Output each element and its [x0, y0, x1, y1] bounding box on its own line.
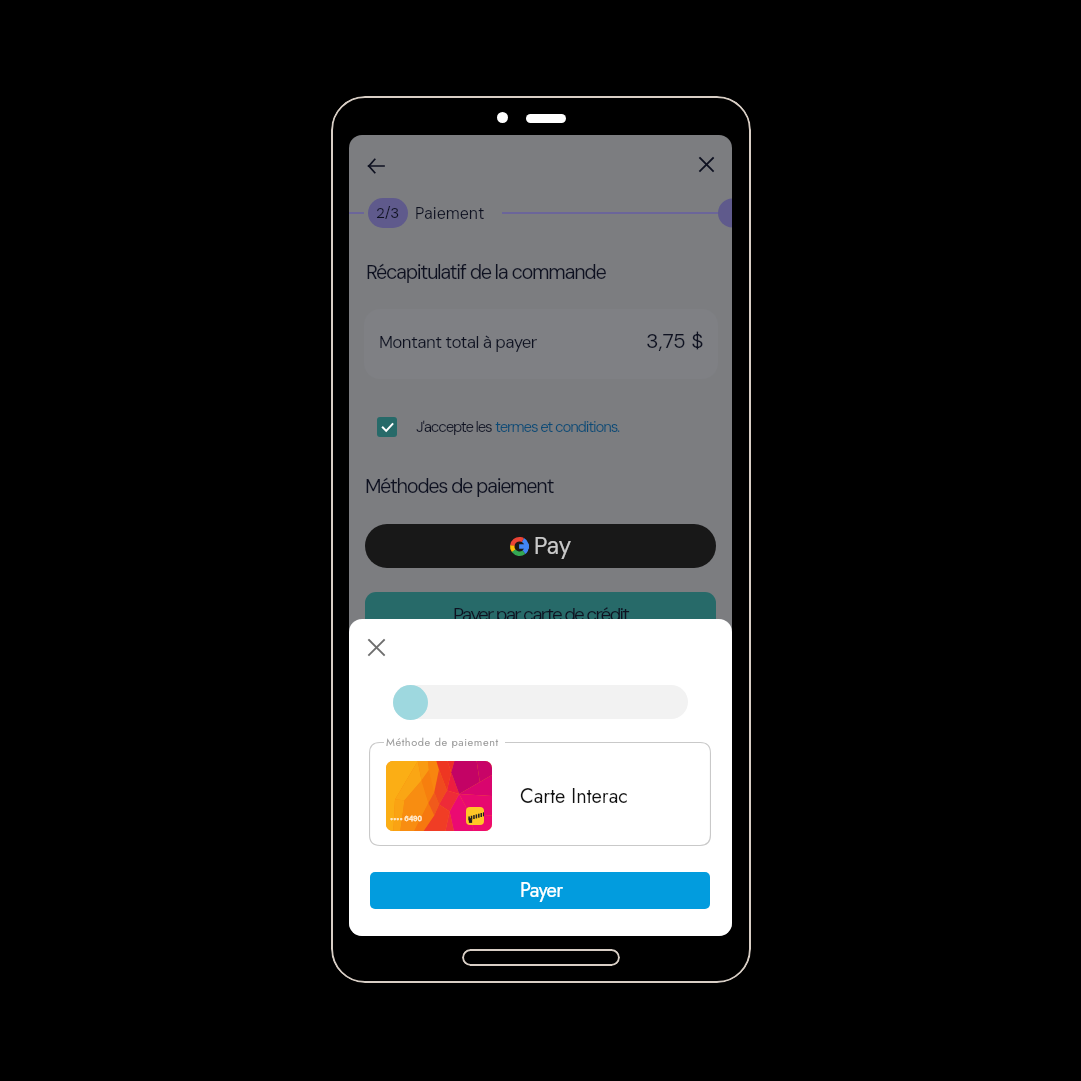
button[interactable]: Payer — [370, 872, 710, 909]
button[interactable]: Close — [688, 146, 725, 183]
staticText: Pay — [534, 531, 571, 561]
staticText: Carte Interac — [520, 782, 628, 811]
staticText: Paiement — [415, 203, 485, 224]
staticText: Récapitulatif de la commande — [366, 259, 606, 285]
staticText: Méthodes de paiement — [365, 473, 554, 499]
staticText: J'accepte les — [416, 417, 495, 437]
staticText: •••• 6490 — [390, 814, 422, 824]
button[interactable]: termes et conditions. — [495, 417, 620, 437]
staticText: Payer — [520, 876, 563, 905]
button[interactable]: Paiement — [415, 198, 485, 228]
button[interactable]: Pay with Google Pay — [365, 524, 716, 568]
button[interactable]: J'accepte les — [377, 413, 620, 441]
button[interactable]: Montant total à payer — [364, 309, 718, 379]
button[interactable]: 2/3 — [368, 198, 408, 228]
staticText: 2/3 — [376, 203, 400, 223]
button[interactable]: Méthode de paiement — [369, 742, 711, 846]
button[interactable]: Payer par carte de crédit — [365, 592, 716, 644]
staticText: Montant total à payer — [379, 331, 537, 353]
button[interactable]: Close — [358, 629, 394, 665]
staticText: Payer par carte de crédit — [453, 602, 629, 627]
staticText: 3,75 $ — [646, 327, 704, 354]
staticText: Méthode de paiement — [386, 734, 499, 750]
button[interactable]: Back — [357, 147, 394, 184]
